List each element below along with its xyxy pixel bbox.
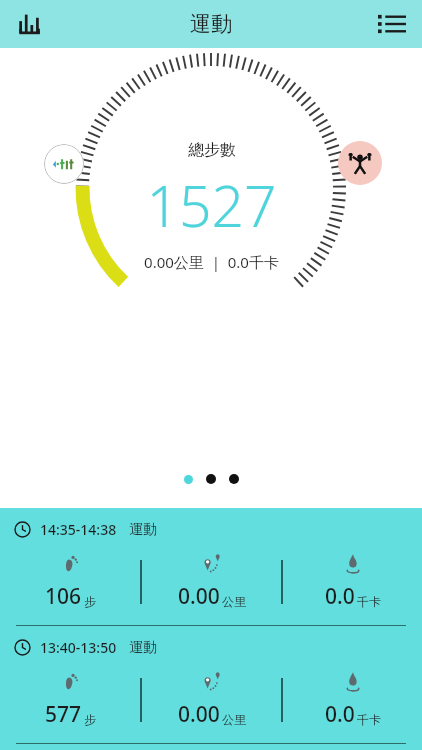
staticText: 步 (84, 712, 96, 727)
button[interactable]: Page 2 (206, 474, 216, 484)
staticText: 0.00 (178, 582, 220, 611)
staticText: 14:35-14:38 (40, 520, 117, 539)
staticText: 1527 (146, 166, 277, 244)
staticText: 運動 (129, 639, 157, 657)
staticText: 577 (45, 700, 82, 729)
button[interactable]: Page 1 (184, 475, 193, 484)
staticText: 總步數 (188, 140, 236, 160)
staticText: 106 (45, 582, 82, 611)
staticText: 公里 (222, 712, 246, 727)
staticText: 13:40-13:50 (40, 638, 117, 657)
staticText: 步 (84, 594, 96, 609)
staticText: 公里 (222, 594, 246, 609)
button[interactable]: 13:40-13:50 (0, 626, 422, 743)
staticText: 運動 (190, 11, 232, 37)
button[interactable]: Menu (370, 2, 414, 46)
staticText: 0.00 (178, 700, 220, 729)
staticText: 0.0 (325, 582, 355, 611)
button[interactable]: Statistics (8, 2, 52, 46)
staticText: 運動 (129, 521, 157, 539)
staticText: 千卡 (357, 594, 381, 609)
staticText: 0.00公里 | 0.0千卡 (144, 252, 279, 272)
button[interactable]: 14:35-14:38 (0, 508, 422, 625)
button[interactable]: Workout (338, 141, 382, 185)
staticText: 0.0 (325, 700, 355, 729)
button[interactable]: Fit app (44, 144, 84, 184)
staticText: 千卡 (357, 712, 381, 727)
button[interactable]: Page 3 (229, 474, 239, 484)
